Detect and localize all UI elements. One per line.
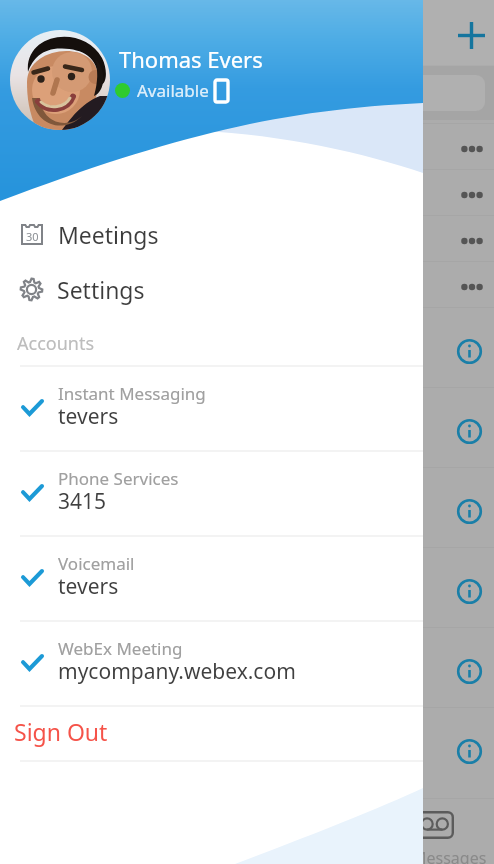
staticText: Meetings	[58, 219, 159, 250]
button[interactable]: Info	[446, 563, 494, 611]
staticText: WebEx Meeting	[58, 637, 183, 660]
button[interactable]: Instant Messaging	[0, 368, 423, 452]
staticText: tevers	[58, 402, 119, 431]
button[interactable]: 30	[0, 210, 423, 258]
button[interactable]: Settings	[0, 265, 423, 313]
staticText: 3415	[58, 487, 107, 516]
button[interactable]: Info	[446, 723, 494, 771]
staticText: Thomas Evers	[119, 44, 263, 74]
staticText: Messages	[412, 847, 487, 864]
staticText: Phone Services	[58, 467, 179, 490]
button[interactable]	[4, 75, 485, 111]
button[interactable]: Info	[446, 323, 494, 371]
button[interactable]: More options	[448, 169, 494, 215]
staticText: 30	[26, 229, 39, 244]
staticText: mycompany.webex.com	[58, 657, 296, 686]
staticText: tevers	[58, 572, 119, 601]
staticText: Available	[137, 79, 209, 102]
button[interactable]: Add	[448, 12, 494, 58]
staticText: Instant Messaging	[58, 382, 206, 405]
button[interactable]: Phone Services	[0, 453, 423, 537]
button[interactable]: Voicemail	[0, 538, 423, 622]
button[interactable]: Sign Out	[0, 704, 423, 758]
button[interactable]: More options	[448, 123, 494, 169]
button[interactable]: Info	[446, 643, 494, 691]
button[interactable]: Info	[446, 483, 494, 531]
staticText: Settings	[57, 274, 145, 305]
button[interactable]: WebEx Meeting	[0, 623, 423, 707]
button[interactable]: More options	[448, 215, 494, 261]
button[interactable]: Messages	[393, 798, 494, 864]
button[interactable]: More options	[448, 261, 494, 307]
button[interactable]: Info	[446, 403, 494, 451]
staticText: Voicemail	[58, 552, 135, 575]
staticText: Accounts	[17, 331, 95, 356]
staticText: Sign Out	[14, 716, 108, 747]
